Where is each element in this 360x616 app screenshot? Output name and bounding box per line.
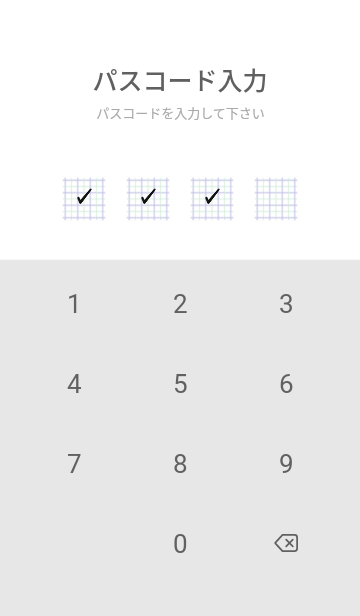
button[interactable]: 4 [21, 344, 127, 424]
staticText: 8 [173, 449, 188, 479]
button[interactable]: 5 [127, 344, 233, 424]
button[interactable]: 7 [21, 424, 127, 504]
button[interactable]: Backspace [233, 504, 339, 584]
staticText: 0 [173, 529, 188, 559]
staticText: 9 [279, 449, 294, 479]
button[interactable]: 3 [233, 264, 339, 344]
staticText: 3 [279, 289, 294, 319]
button[interactable]: 9 [233, 424, 339, 504]
staticText: 4 [67, 369, 82, 399]
button[interactable]: 6 [233, 344, 339, 424]
staticText: 5 [173, 369, 188, 399]
staticText: パスコード入力 [92, 61, 268, 97]
button[interactable]: 1 [21, 264, 127, 344]
staticText: 1 [67, 289, 82, 319]
button[interactable]: 0 [127, 504, 233, 584]
button[interactable]: 8 [127, 424, 233, 504]
staticText: パスコードを入力して下さい [96, 103, 265, 122]
staticText: 7 [67, 449, 82, 479]
staticText: 2 [173, 289, 188, 319]
button[interactable]: 2 [127, 264, 233, 344]
staticText: 6 [279, 369, 294, 399]
